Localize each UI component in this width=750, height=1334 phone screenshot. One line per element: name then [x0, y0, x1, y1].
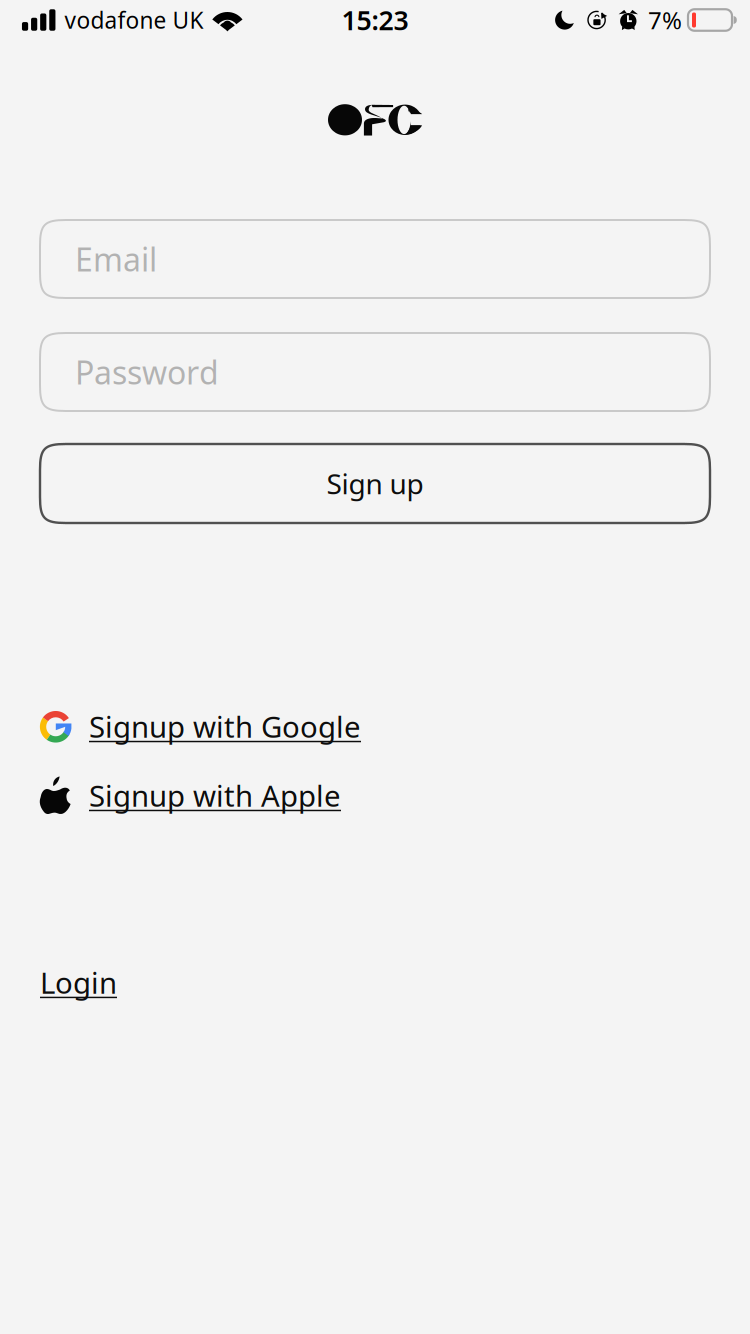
staticText: vodafone UK	[64, 5, 203, 35]
staticText: Sign up	[326, 465, 423, 502]
staticText: Email	[75, 238, 157, 280]
staticText: 7%	[648, 4, 682, 36]
button[interactable]: Login	[40, 963, 117, 1002]
staticText: Signup with Apple	[89, 776, 341, 815]
button[interactable]: Password	[40, 333, 710, 411]
button[interactable]: Sign up	[40, 444, 710, 523]
button[interactable]: Signup with Apple	[40, 776, 341, 815]
button[interactable]: Signup with Google	[40, 707, 361, 746]
staticText: Login	[40, 963, 117, 1002]
staticText: Password	[75, 351, 219, 393]
button[interactable]: Email	[40, 220, 710, 298]
staticText: 15:23	[341, 2, 408, 38]
staticText: Signup with Google	[89, 707, 361, 746]
